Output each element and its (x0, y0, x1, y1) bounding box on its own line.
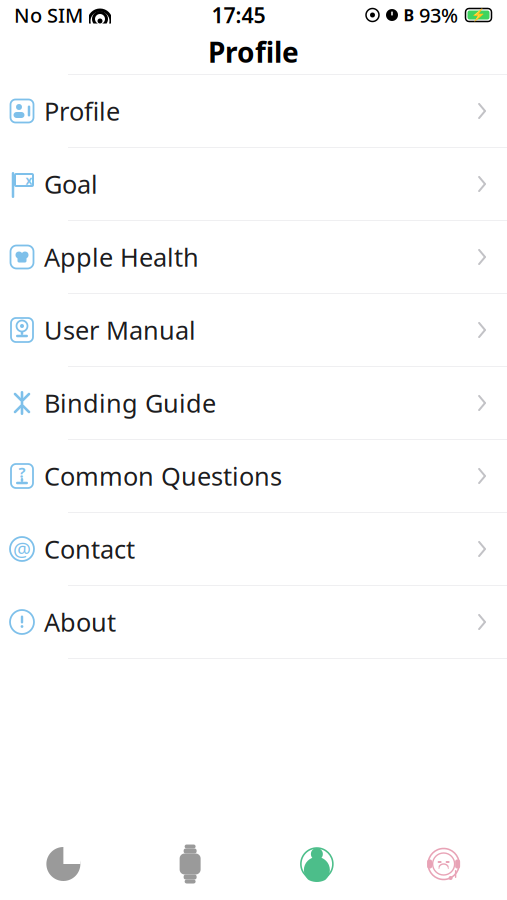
staticText: Goal (44, 167, 98, 201)
staticText: B (403, 4, 414, 26)
button[interactable]: User Manual (0, 294, 507, 367)
button[interactable]: x (0, 148, 507, 221)
staticText: ? (18, 462, 25, 482)
staticText: @ (13, 536, 31, 562)
staticText: Profile (208, 33, 299, 71)
staticText: ⚡ (471, 8, 486, 22)
button[interactable]: About (0, 586, 507, 659)
staticText: Profile (44, 94, 120, 128)
button[interactable]: Device (127, 844, 254, 884)
staticText: x (25, 172, 32, 188)
button[interactable]: @ (0, 513, 507, 586)
staticText: Apple Health (44, 240, 199, 274)
staticText: About (44, 605, 116, 639)
button[interactable]: Apple Health (0, 221, 507, 294)
staticText: 17:45 (211, 1, 265, 29)
button[interactable]: Statistics (0, 846, 127, 882)
staticText: 93% (419, 2, 458, 28)
staticText: Binding Guide (44, 386, 216, 420)
button[interactable]: Profile (253, 846, 380, 882)
staticText: Common Questions (44, 459, 282, 493)
button[interactable]: Binding Guide (0, 367, 507, 440)
button[interactable]: ? (0, 440, 507, 513)
button[interactable]: Support (380, 846, 507, 882)
staticText: User Manual (44, 313, 196, 347)
staticText: No SIM (14, 2, 83, 28)
staticText: Contact (44, 532, 135, 566)
button[interactable]: Profile (0, 75, 507, 148)
